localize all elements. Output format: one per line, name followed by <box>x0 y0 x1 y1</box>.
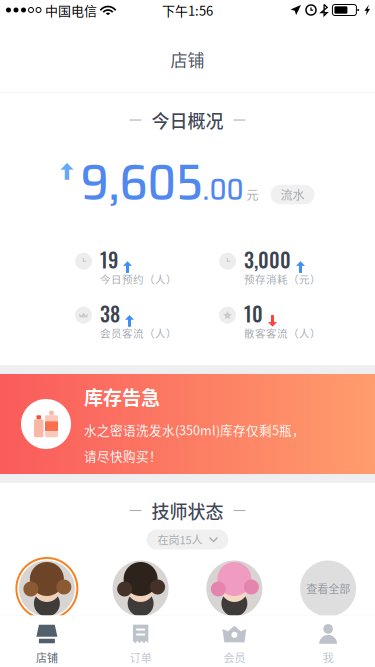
button[interactable]: 在岗15人 <box>146 530 228 549</box>
button[interactable]: 订单 <box>94 615 188 667</box>
staticText: .00 <box>202 166 243 213</box>
staticText: 店铺 <box>36 649 58 665</box>
staticText: 散客客流（人） <box>244 325 321 340</box>
button[interactable]: 店铺 <box>0 615 94 667</box>
staticText: 预存消耗（元） <box>244 271 321 287</box>
staticText: 中国电信 <box>45 1 97 19</box>
staticText: 元 <box>246 186 258 203</box>
button[interactable]: 库存告急 <box>0 374 375 474</box>
button[interactable]: 查看全部 <box>297 557 359 619</box>
staticText: 19 <box>100 245 118 274</box>
staticText: 10 <box>244 299 263 328</box>
staticText: 流水 <box>280 186 304 203</box>
staticText: 在岗15人 <box>157 532 202 547</box>
button[interactable]: 会员 <box>187 615 281 667</box>
staticText: 订单 <box>130 649 152 665</box>
staticText: 我 <box>323 649 334 665</box>
staticText: 店铺 <box>170 47 204 71</box>
staticText: 今日预约（人） <box>100 271 177 287</box>
staticText: 下午1:56 <box>162 1 213 19</box>
staticText: 38 <box>100 299 120 328</box>
button[interactable] <box>203 557 265 619</box>
staticText: 请尽快购买！ <box>84 447 162 465</box>
staticText: 技师状态 <box>151 497 223 524</box>
staticText: 会员 <box>223 649 245 665</box>
staticText: 库存告急 <box>84 383 160 410</box>
staticText: 今日概况 <box>151 107 223 133</box>
staticText: 3,000 <box>244 245 291 274</box>
button[interactable]: 我 <box>281 615 375 667</box>
staticText: 9,605 <box>80 143 202 222</box>
staticText: 水之密语洗发水(350ml)库存仅剩5瓶， <box>84 420 305 439</box>
staticText: 查看全部 <box>306 580 350 596</box>
button[interactable] <box>16 557 78 619</box>
staticText: 会员客流（人） <box>100 325 177 340</box>
button[interactable] <box>110 557 172 619</box>
